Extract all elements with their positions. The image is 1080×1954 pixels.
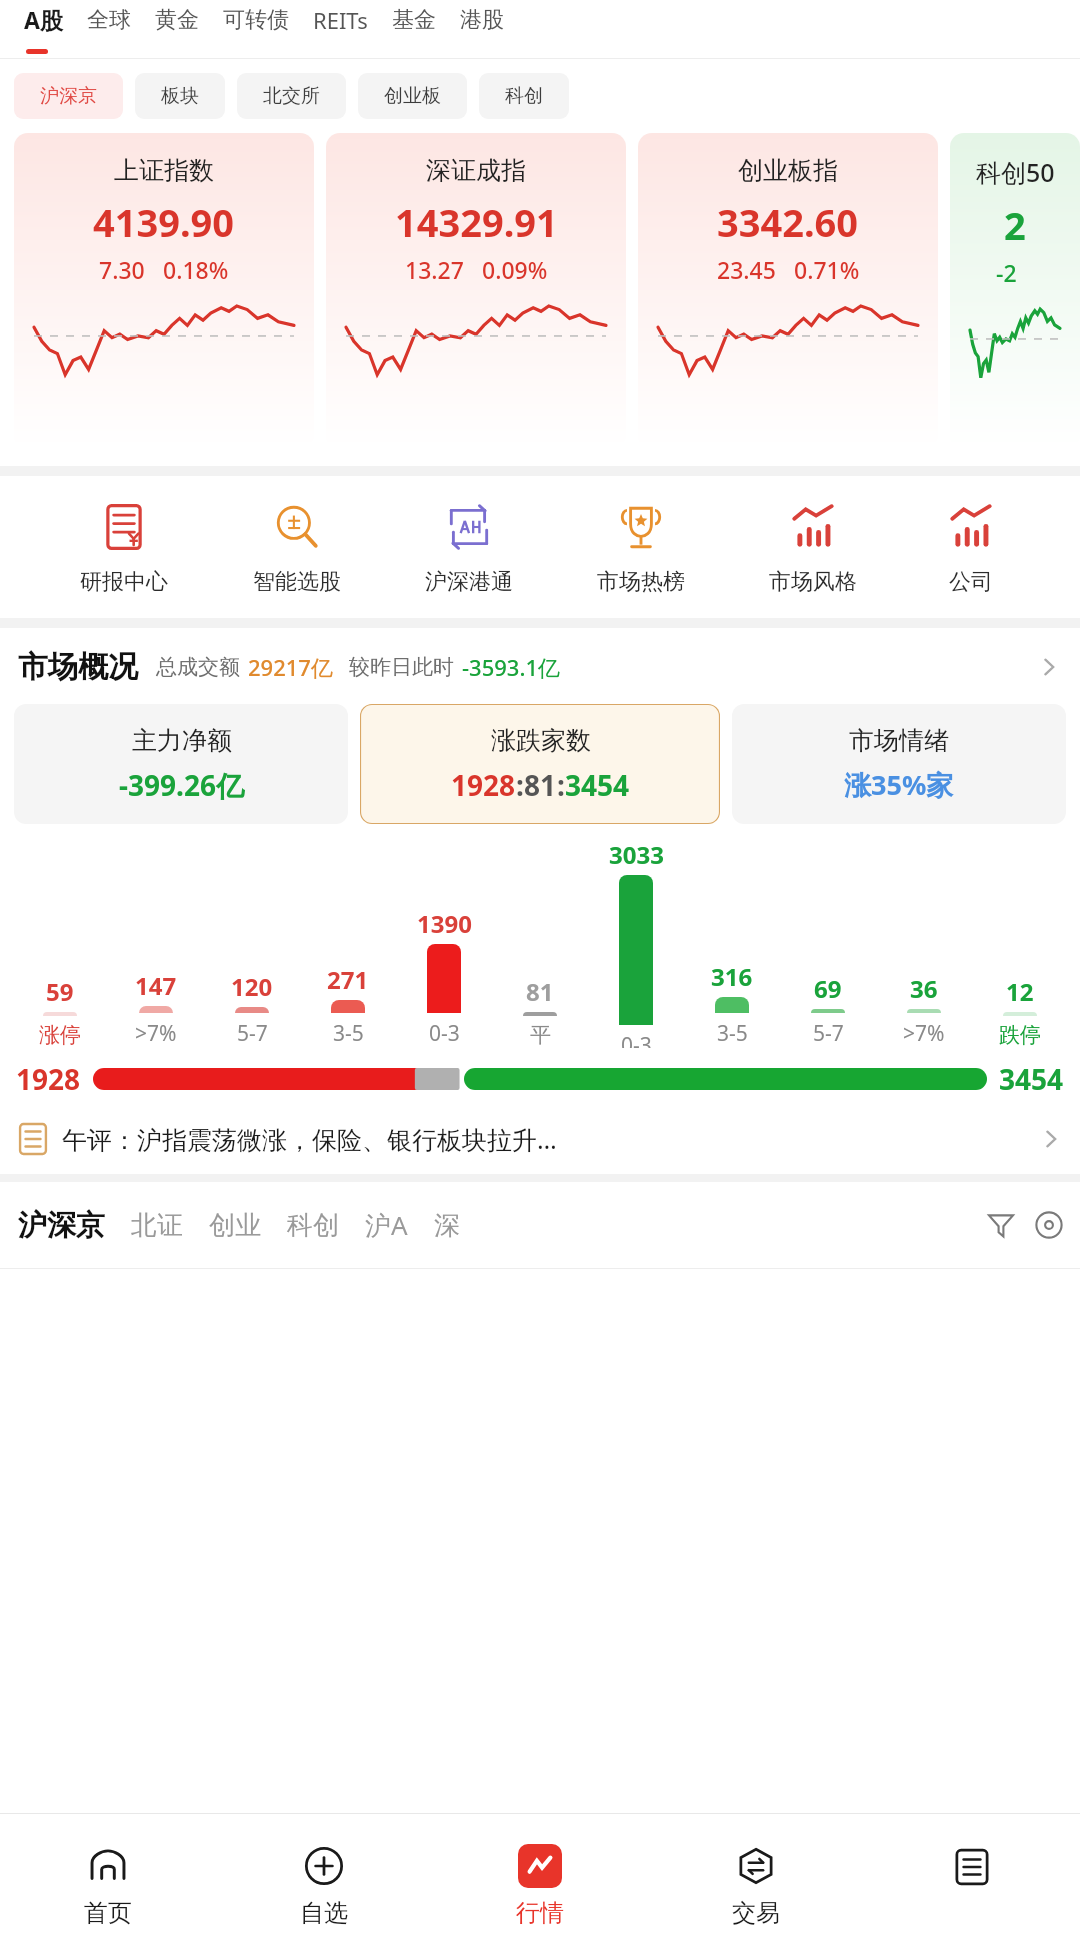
- button[interactable]: 北交所: [237, 73, 346, 119]
- staticText: :: [557, 766, 565, 804]
- staticText: 涨跌家数: [491, 725, 591, 756]
- button[interactable]: 交易: [648, 1832, 864, 1936]
- button[interactable]: 沪A: [365, 1207, 434, 1243]
- button[interactable]: 北证: [131, 1209, 209, 1242]
- staticText: 深证成指: [426, 155, 526, 186]
- button[interactable]: 涨跌家数: [360, 704, 720, 824]
- staticText: >7%: [135, 1019, 177, 1048]
- button[interactable]: 市场概况: [0, 648, 1080, 686]
- staticText: 午评：沪指震荡微涨，保险、银行板块拉升…: [62, 1122, 1038, 1156]
- staticText: 板块: [161, 84, 199, 108]
- staticText: 科创50: [976, 155, 1055, 189]
- button[interactable]: 智能选股: [249, 498, 345, 596]
- button[interactable]: 港股: [448, 2, 516, 38]
- staticText: 沪深港通: [425, 568, 513, 596]
- staticText: 81: [524, 766, 557, 804]
- staticText: 7.30: [99, 254, 145, 285]
- button[interactable]: 科创: [479, 73, 569, 119]
- button[interactable]: 午评：沪指震荡微涨，保险、银行板块拉升…: [0, 1116, 1080, 1162]
- button[interactable]: 市场风格: [765, 498, 861, 596]
- staticText: 3342.60: [717, 196, 859, 248]
- staticText: 0.18%: [163, 254, 229, 285]
- staticText: 12: [1006, 975, 1034, 1008]
- staticText: 市场概况: [18, 648, 138, 686]
- staticText: 全球: [87, 6, 131, 34]
- staticText: 北交所: [263, 84, 320, 108]
- staticText: 13.27: [405, 254, 464, 285]
- staticText: >7%: [903, 1019, 945, 1048]
- staticText: 总成交额: [156, 654, 240, 680]
- staticText: :: [516, 766, 524, 804]
- button[interactable]: 可转债: [211, 2, 301, 38]
- staticText: 深: [434, 1209, 460, 1242]
- button[interactable]: Filter: [980, 1204, 1022, 1246]
- button[interactable]: 深: [434, 1209, 486, 1242]
- button[interactable]: [864, 1833, 1080, 1935]
- staticText: -3593.1亿: [462, 652, 560, 682]
- button[interactable]: 科创: [287, 1209, 365, 1242]
- staticText: 120: [231, 970, 273, 1003]
- button[interactable]: 基金: [380, 2, 448, 38]
- button[interactable]: 创业: [209, 1209, 287, 1242]
- button[interactable]: 行情: [432, 1832, 648, 1936]
- staticText: 研报中心: [80, 568, 168, 596]
- button[interactable]: 沪深京: [14, 73, 123, 119]
- button[interactable]: REITs: [301, 1, 380, 39]
- staticText: 较昨日此时: [349, 654, 454, 680]
- button[interactable]: A股: [12, 0, 75, 39]
- button[interactable]: 科创50: [950, 133, 1080, 448]
- button[interactable]: 黄金: [143, 2, 211, 38]
- staticText: 316: [711, 960, 753, 993]
- staticText: 行情: [516, 1898, 564, 1928]
- button[interactable]: 板块: [135, 73, 225, 119]
- staticText: 0.09%: [482, 254, 548, 285]
- staticText: 创业板: [384, 84, 441, 108]
- staticText: 1390: [417, 907, 472, 940]
- staticText: 29217亿: [248, 652, 333, 682]
- staticText: 沪深京: [40, 84, 97, 108]
- staticText: 3454: [999, 1060, 1064, 1098]
- staticText: 市场热榜: [597, 568, 685, 596]
- button[interactable]: Settings: [1028, 1204, 1070, 1246]
- staticText: 黄金: [155, 6, 199, 34]
- button[interactable]: 研报中心: [76, 498, 172, 596]
- staticText: 0-3: [621, 1031, 652, 1048]
- staticText: 主力净额: [132, 725, 232, 756]
- staticText: 基金: [392, 6, 436, 34]
- button[interactable]: 深证成指: [326, 133, 626, 448]
- staticText: 跌停: [999, 1022, 1041, 1048]
- staticText: 沪深京: [18, 1207, 105, 1244]
- button[interactable]: 沪深京: [18, 1207, 131, 1244]
- staticText: 4139.90: [93, 196, 235, 248]
- staticText: 市场风格: [769, 568, 857, 596]
- button[interactable]: 首页: [0, 1832, 216, 1936]
- button[interactable]: 沪深港通: [421, 498, 517, 596]
- button[interactable]: 上证指数: [14, 133, 314, 448]
- staticText: 可转债: [223, 6, 289, 34]
- staticText: 交易: [732, 1898, 780, 1928]
- button[interactable]: 自选: [216, 1832, 432, 1936]
- staticText: 涨停: [39, 1022, 81, 1048]
- staticText: 北证: [131, 1209, 183, 1242]
- button[interactable]: 市场热榜: [593, 498, 689, 596]
- button[interactable]: 公司: [938, 498, 1004, 596]
- staticText: 5-7: [237, 1019, 268, 1048]
- staticText: 科创: [287, 1209, 339, 1242]
- staticText: REITs: [313, 5, 368, 35]
- staticText: 59: [46, 975, 74, 1008]
- staticText: 2: [1004, 199, 1026, 251]
- staticText: 上证指数: [114, 155, 214, 186]
- staticText: 5-7: [813, 1019, 844, 1048]
- staticText: 1928: [451, 766, 516, 804]
- staticText: A股: [24, 4, 63, 35]
- staticText: 创业板指: [738, 155, 838, 186]
- button[interactable]: 创业板: [358, 73, 467, 119]
- button[interactable]: 全球: [75, 2, 143, 38]
- staticText: 1928: [16, 1060, 81, 1098]
- button[interactable]: 市场情绪: [732, 704, 1066, 824]
- staticText: 首页: [84, 1898, 132, 1928]
- staticText: -399.26亿: [119, 766, 244, 804]
- button[interactable]: 主力净额: [14, 704, 348, 824]
- button[interactable]: 创业板指: [638, 133, 938, 448]
- staticText: 23.45: [717, 254, 776, 285]
